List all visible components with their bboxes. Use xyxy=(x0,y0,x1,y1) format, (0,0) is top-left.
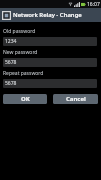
button[interactable]: 1234 xyxy=(3,37,97,46)
staticText: Repeat password xyxy=(3,70,44,77)
staticText: 1234 xyxy=(5,38,17,45)
button[interactable]: 5678 xyxy=(3,79,97,88)
staticText: 5678 xyxy=(5,80,17,87)
staticText: Old password xyxy=(3,28,36,35)
staticText: Network Relay - Change password xyxy=(13,11,99,19)
staticText: Cancel xyxy=(66,95,86,103)
staticText: New password xyxy=(3,49,38,56)
staticText: OK xyxy=(21,95,30,103)
button[interactable]: 5678 xyxy=(3,58,97,67)
button[interactable]: OK xyxy=(3,94,47,104)
staticText: 16:07 xyxy=(87,1,100,8)
button[interactable]: Cancel xyxy=(53,94,98,104)
button[interactable]: Network Relay - Change password xyxy=(0,8,101,22)
staticText: 5678 xyxy=(5,59,17,66)
